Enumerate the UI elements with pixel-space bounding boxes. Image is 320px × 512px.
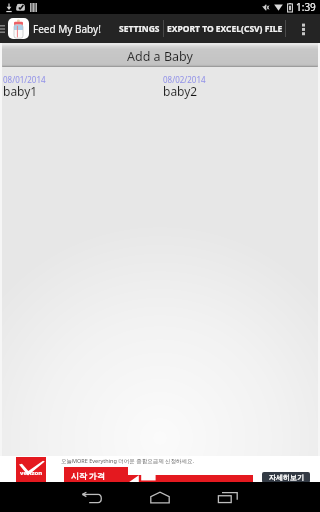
staticText: baby1: [3, 83, 38, 99]
button[interactable]: SETTINGS: [115, 14, 163, 43]
staticText: 자세히보기: [269, 473, 304, 482]
button[interactable]: 08/02/2014: [160, 73, 320, 107]
staticText: verizon: [20, 469, 43, 477]
staticText: baby2: [163, 83, 198, 99]
button[interactable]: verizon: [0, 456, 320, 482]
staticText: EXPORT TO EXCEL(CSV) FILE: [167, 23, 283, 35]
button[interactable]: 08/01/2014: [0, 73, 160, 107]
button[interactable]: More options: [286, 14, 320, 43]
staticText: 08/01/2014: [3, 74, 46, 85]
button[interactable]: EXPORT TO EXCEL(CSV) FILE: [164, 14, 285, 43]
button[interactable]: Home: [126, 482, 194, 512]
staticText: 시작 가격: [71, 470, 106, 481]
staticText: 오늘MORE Everything 더어운 종합요금제 신청하세요.: [61, 457, 195, 465]
button[interactable]: Recent apps: [194, 482, 262, 512]
button[interactable]: Add a Baby: [1, 45, 319, 67]
button[interactable]: Navigate up: [0, 14, 6, 43]
button[interactable]: Back: [58, 482, 126, 512]
staticText: SETTINGS: [119, 23, 160, 35]
staticText: 08/02/2014: [163, 74, 206, 85]
staticText: 1:39: [296, 0, 316, 14]
staticText: Add a Baby: [127, 48, 193, 65]
staticText: Feed My Baby!: [33, 22, 101, 36]
